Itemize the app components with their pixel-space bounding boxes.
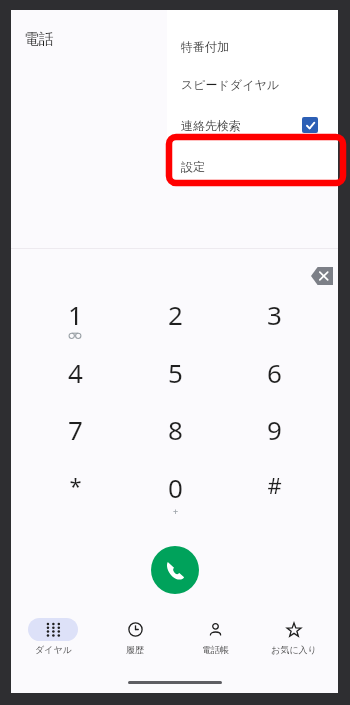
button[interactable]: 電話帳 bbox=[175, 618, 255, 674]
staticText: 4 bbox=[68, 355, 83, 390]
staticText: 電話 bbox=[24, 30, 54, 49]
staticText: 3 bbox=[267, 297, 282, 332]
button[interactable]: 5 bbox=[135, 355, 215, 407]
staticText: + bbox=[173, 505, 179, 517]
button[interactable]: 連絡先検索 bbox=[167, 106, 338, 144]
staticText: 7 bbox=[68, 412, 83, 447]
button[interactable]: 8 bbox=[135, 412, 215, 464]
staticText: 特番付加 bbox=[181, 39, 229, 54]
button[interactable]: 7 bbox=[35, 412, 115, 464]
button[interactable]: 特番付加 bbox=[167, 27, 338, 65]
button[interactable]: 2 bbox=[135, 297, 215, 349]
staticText: 6 bbox=[267, 355, 282, 390]
button[interactable]: 3 bbox=[234, 297, 314, 349]
staticText: 0 bbox=[168, 470, 183, 505]
staticText: 連絡先検索 bbox=[181, 118, 241, 133]
button[interactable]: 4 bbox=[35, 355, 115, 407]
staticText: # bbox=[267, 470, 282, 500]
button[interactable]: スピードダイヤル bbox=[167, 65, 338, 103]
button[interactable]: ダイヤル bbox=[13, 618, 93, 674]
staticText: 1 bbox=[68, 297, 83, 332]
button[interactable]: 設定 bbox=[167, 147, 338, 185]
button[interactable]: * bbox=[35, 470, 115, 522]
button[interactable]: お気に入り bbox=[254, 618, 334, 674]
staticText: ダイヤル bbox=[35, 644, 72, 655]
staticText: 5 bbox=[168, 355, 183, 390]
button[interactable]: # bbox=[234, 470, 314, 522]
button[interactable]: 1 bbox=[35, 297, 115, 349]
button[interactable]: 発信 bbox=[151, 546, 199, 594]
button[interactable]: 履歴 bbox=[95, 618, 175, 674]
staticText: 設定 bbox=[181, 159, 205, 174]
button[interactable]: 9 bbox=[234, 412, 314, 464]
staticText: 8 bbox=[168, 412, 183, 447]
staticText: お気に入り bbox=[271, 644, 317, 655]
button[interactable]: 削除 bbox=[311, 267, 333, 285]
button[interactable]: 0 bbox=[135, 470, 215, 522]
staticText: 電話帳 bbox=[202, 644, 229, 655]
staticText: スピードダイヤル bbox=[181, 77, 279, 92]
staticText: 履歴 bbox=[126, 644, 144, 655]
button[interactable]: 6 bbox=[234, 355, 314, 407]
staticText: 9 bbox=[267, 412, 282, 447]
staticText: 2 bbox=[168, 297, 183, 332]
staticText: * bbox=[69, 470, 82, 500]
